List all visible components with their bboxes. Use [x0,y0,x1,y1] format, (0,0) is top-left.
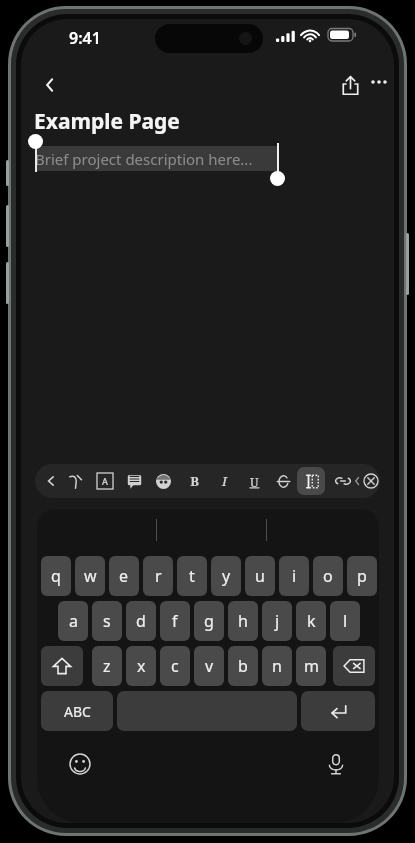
staticText: h [238,610,248,632]
button[interactable]: v [194,646,224,686]
staticText: r [155,565,162,587]
staticText: n [272,655,282,677]
button[interactable]: Back [29,64,71,106]
staticText: I [222,472,227,490]
staticText: B [190,472,199,490]
button[interactable]: p [347,556,377,596]
staticText: f [172,610,178,632]
staticText: q [51,565,61,587]
staticText: ABC [64,702,91,721]
staticText: b [238,655,248,677]
button[interactable]: x [126,646,156,686]
staticText: 9:41 [69,27,101,49]
button[interactable]: Voice input [319,747,353,781]
button[interactable]: s [92,601,122,641]
button[interactable]: i [279,556,309,596]
staticText: s [103,610,111,632]
button[interactable]: Selection start handle [28,134,43,149]
button[interactable]: More options [361,64,394,100]
button[interactable]: z [92,646,122,686]
button[interactable]: Close toolbar [359,469,380,493]
button[interactable]: k [296,601,326,641]
button[interactable]: q [41,556,71,596]
button[interactable]: Enter [301,691,375,731]
staticText: y [222,565,231,587]
button[interactable]: l [330,601,360,641]
staticText: d [136,610,146,632]
button[interactable]: t [177,556,207,596]
button[interactable]: y [211,556,241,596]
button[interactable]: Emoji [63,747,97,781]
staticText: j [275,610,280,632]
button[interactable]: n [262,646,292,686]
button[interactable]: w [75,556,105,596]
button[interactable]: Undo style [61,467,89,495]
staticText: e [119,565,129,587]
staticText: o [323,565,333,587]
staticText: m [304,655,319,677]
button[interactable]: a [58,601,88,641]
button[interactable]: Selection end handle [270,171,285,186]
button[interactable]: Italic [210,467,238,495]
button[interactable]: Underline [240,467,268,495]
button[interactable]: f [160,601,190,641]
staticText: g [204,610,214,632]
button[interactable]: Select text [297,467,325,495]
staticText: t [189,565,195,587]
button[interactable]: u [245,556,275,596]
button[interactable]: b [228,646,258,686]
staticText: a [69,610,78,632]
staticText: Brief project description here... [35,149,253,169]
button[interactable]: h [228,601,258,641]
button[interactable]: Text style [91,467,119,495]
button[interactable]: Bold [180,467,208,495]
button[interactable]: Backspace [333,646,375,686]
button[interactable]: Shift [41,646,83,686]
staticText: c [171,655,179,677]
button[interactable]: Previous [37,467,65,495]
button[interactable]: c [160,646,190,686]
button[interactable]: ABC [41,691,113,731]
button[interactable]: d [126,601,156,641]
staticText: x [137,655,146,677]
staticText: v [205,655,214,677]
staticText: p [357,565,367,587]
staticText: Example Page [34,107,180,136]
staticText: i [292,565,297,587]
button[interactable]: Insert link [329,467,357,495]
staticText: z [103,655,111,677]
button[interactable]: o [313,556,343,596]
button[interactable] [35,146,278,171]
button[interactable]: g [194,601,224,641]
button[interactable]: m [296,646,326,686]
button[interactable]: Highlight [149,467,177,495]
staticText: l [343,610,348,632]
button[interactable]: Strikethrough [269,467,297,495]
staticText: w [84,565,97,587]
button[interactable]: Comment [120,467,148,495]
button[interactable]: j [262,601,292,641]
staticText: k [307,610,316,632]
button[interactable]: e [109,556,139,596]
staticText: A [102,475,108,487]
button[interactable]: r [143,556,173,596]
staticText: U [250,474,259,489]
button[interactable]: Share [329,64,371,106]
staticText: u [255,565,265,587]
